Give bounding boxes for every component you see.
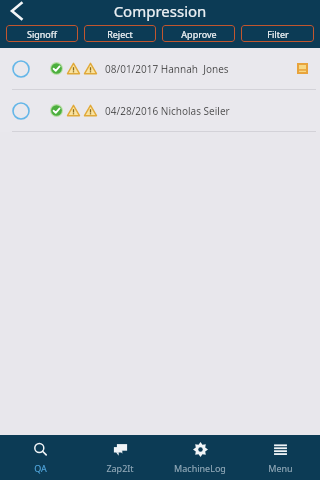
button[interactable]: Back [0,0,34,22]
button[interactable]: Approve [162,25,235,42]
button[interactable]: Signoff [6,25,78,42]
staticText: Compression [0,1,320,21]
button[interactable]: Menu [240,435,320,480]
button[interactable]: Reject [84,25,156,42]
staticText: QA [34,462,47,474]
button[interactable]: 04/28/2016 Nicholas Seiler [0,90,320,131]
staticText: Menu [268,462,293,474]
button[interactable]: MachineLog [160,435,240,480]
staticText: 04/28/2016 Nicholas Seiler [105,104,230,118]
button[interactable]: QA [0,435,80,480]
staticText: 08/01/2017 Hannah Jones [105,62,229,76]
staticText: Zap2It [106,462,134,474]
staticText: Reject [107,28,133,40]
staticText: Signoff [27,28,57,40]
staticText: MachineLog [174,462,226,474]
staticText: Approve [181,28,217,40]
button[interactable]: 08/01/2017 Hannah Jones [0,48,320,89]
button[interactable]: Filter [241,25,314,42]
staticText: Filter [267,28,289,40]
button[interactable]: Zap2It [80,435,160,480]
